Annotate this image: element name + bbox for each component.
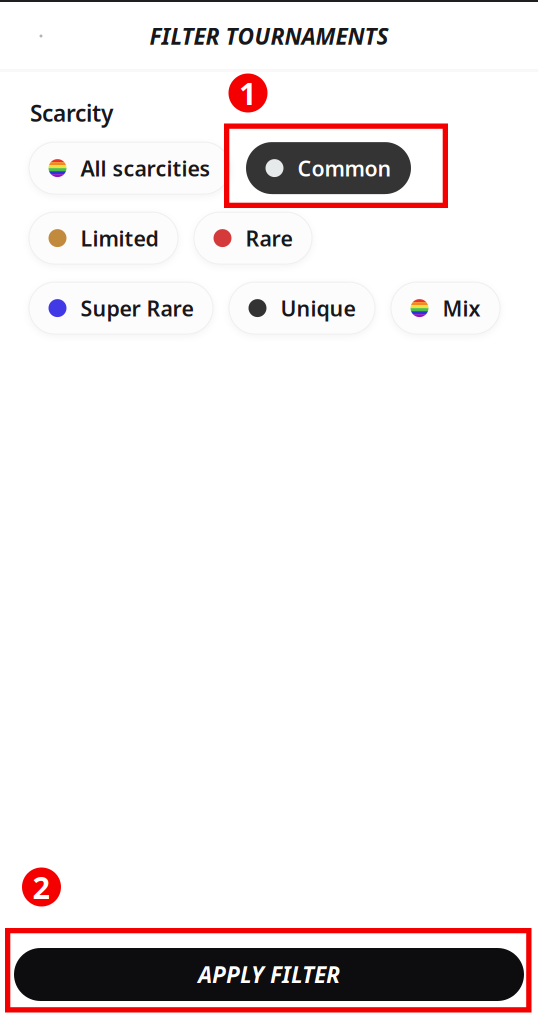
button[interactable]: Unique xyxy=(229,282,375,334)
staticText: Unique xyxy=(280,294,355,322)
staticText: Super Rare xyxy=(80,294,193,322)
button[interactable]: Close xyxy=(23,18,59,54)
staticText: Rare xyxy=(245,224,292,252)
staticText: All scarcities xyxy=(80,154,210,182)
staticText: Limited xyxy=(80,224,158,252)
staticText: Common xyxy=(297,154,391,182)
staticText: Scarcity xyxy=(30,98,113,128)
button[interactable]: APPLY FILTER xyxy=(14,948,524,1001)
button[interactable]: Rare xyxy=(194,212,312,264)
staticText: 2 xyxy=(32,867,50,907)
button[interactable]: Common xyxy=(246,142,411,194)
button[interactable]: Limited xyxy=(29,212,178,264)
button[interactable]: Mix xyxy=(391,282,500,334)
staticText: Mix xyxy=(442,294,480,322)
staticText: APPLY FILTER xyxy=(198,959,340,989)
button[interactable]: All scarcities xyxy=(29,142,230,194)
staticText: 1 xyxy=(239,73,257,113)
staticText: FILTER TOURNAMENTS xyxy=(149,21,388,51)
button[interactable]: Super Rare xyxy=(29,282,213,334)
